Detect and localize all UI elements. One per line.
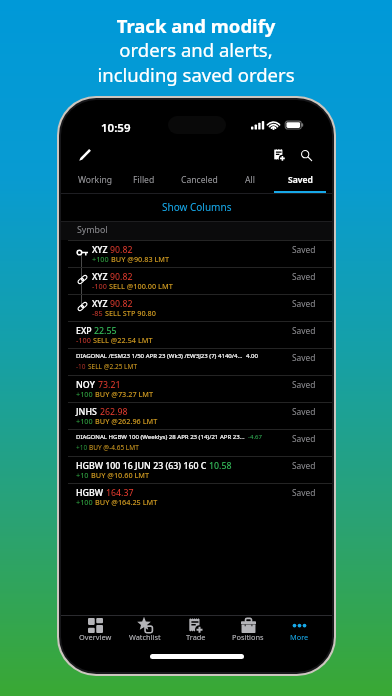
button[interactable]: XYZ: [61, 294, 332, 321]
button[interactable]: Working: [69, 170, 121, 193]
staticText: DIAGONAL HGBW 100 (Weeklys) 28 APR 23 (1…: [76, 433, 248, 441]
staticText: -4.67: [248, 433, 262, 441]
button[interactable]: XYZ: [61, 240, 332, 267]
staticText: Filled: [133, 174, 155, 186]
staticText: HGBW: [76, 487, 106, 499]
staticText: +10: [76, 443, 89, 452]
staticText: Saved: [292, 379, 316, 390]
staticText: Symbol: [77, 224, 108, 236]
staticText: All: [245, 174, 255, 186]
button[interactable]: More: [272, 615, 326, 645]
staticText: Track and modify: [0, 13, 392, 38]
staticText: Positions: [232, 632, 264, 642]
staticText: SELL @22.54 LMT: [93, 335, 153, 345]
button[interactable]: DIAGONAL /ESM23 1/50 APR 23 (Wk3) /EW3J2…: [61, 348, 332, 375]
button[interactable]: Saved: [274, 170, 326, 193]
button[interactable]: Search: [294, 143, 318, 167]
staticText: -100: [76, 335, 93, 345]
staticText: HGBW 100 16 JUN 23 (63) 160 C: [76, 460, 209, 472]
staticText: 10:59: [101, 120, 131, 136]
button[interactable]: New order: [268, 143, 292, 167]
staticText: DIAGONAL /ESM23 1/50 APR 23 (Wk3) /EW3J2…: [76, 352, 246, 360]
staticText: More: [290, 632, 309, 642]
button[interactable]: EXP: [61, 321, 332, 348]
staticText: JNHS: [76, 406, 100, 418]
staticText: BUY @10.60 LMT: [91, 470, 150, 480]
staticText: +100: [92, 254, 111, 264]
staticText: Saved: [292, 433, 316, 444]
button[interactable]: JNHS: [61, 402, 332, 429]
button[interactable]: Overview: [68, 615, 122, 645]
staticText: BUY @73.27 LMT: [95, 389, 154, 399]
button[interactable]: Watchlist: [118, 615, 172, 645]
staticText: Saved: [292, 325, 316, 336]
button[interactable]: HGBW 100 16 JUN 23 (63) 160 C: [61, 456, 332, 483]
staticText: Canceled: [181, 174, 218, 186]
button[interactable]: HGBW: [61, 483, 332, 510]
staticText: 4.00: [246, 352, 258, 360]
staticText: SELL @100.00 LMT: [109, 281, 173, 291]
button[interactable]: Canceled: [173, 170, 225, 193]
staticText: 90.82: [110, 271, 133, 283]
staticText: 90.82: [110, 244, 133, 256]
staticText: Watchlist: [129, 632, 161, 642]
staticText: orders and alerts,: [0, 37, 392, 62]
button[interactable]: NOY: [61, 375, 332, 402]
staticText: +100: [76, 416, 95, 426]
staticText: BUY @90.83 LMT: [111, 254, 170, 264]
staticText: SELL STP 90.80: [105, 308, 156, 318]
staticText: -85: [92, 308, 105, 318]
staticText: 73.21: [98, 379, 121, 391]
button[interactable]: Show Columns: [154, 196, 240, 218]
staticText: Saved: [292, 298, 316, 309]
staticText: Saved: [292, 271, 316, 282]
staticText: NOY: [76, 379, 98, 391]
staticText: 22.55: [94, 325, 117, 337]
staticText: 90.82: [110, 298, 133, 310]
staticText: Trade: [186, 632, 206, 642]
button[interactable]: XYZ: [61, 267, 332, 294]
staticText: +100: [76, 497, 95, 507]
staticText: Saved: [292, 352, 316, 363]
staticText: Saved: [292, 460, 316, 471]
staticText: Saved: [292, 244, 316, 255]
staticText: including saved orders: [0, 62, 392, 87]
button[interactable]: Filled: [118, 170, 170, 193]
staticText: -100: [92, 281, 109, 291]
staticText: Saved: [292, 406, 316, 417]
staticText: +10: [76, 470, 91, 480]
staticText: Working: [78, 174, 112, 186]
staticText: SELL @2.25 LMT: [88, 362, 138, 371]
staticText: +100: [76, 389, 95, 399]
staticText: BUY @164.25 LMT: [95, 497, 158, 507]
button[interactable]: Edit: [73, 142, 97, 166]
staticText: BUY @262.96 LMT: [95, 416, 158, 426]
staticText: Show Columns: [162, 200, 232, 214]
staticText: 164.37: [106, 487, 134, 499]
staticText: XYZ: [92, 244, 110, 256]
staticText: Overview: [79, 632, 112, 642]
staticText: EXP: [76, 325, 94, 337]
staticText: 10.58: [209, 460, 232, 472]
staticText: BUY @-4.65 LMT: [89, 443, 139, 452]
button[interactable]: DIAGONAL HGBW 100 (Weeklys) 28 APR 23 (1…: [61, 429, 332, 456]
button[interactable]: Positions: [221, 615, 275, 645]
staticText: XYZ: [92, 271, 110, 283]
staticText: -10: [76, 362, 88, 371]
button[interactable]: Trade: [169, 615, 223, 645]
staticText: Saved: [288, 174, 313, 186]
staticText: Saved: [292, 487, 316, 498]
staticText: 262.98: [100, 406, 128, 418]
staticText: XYZ: [92, 298, 110, 310]
button[interactable]: All: [224, 170, 276, 193]
